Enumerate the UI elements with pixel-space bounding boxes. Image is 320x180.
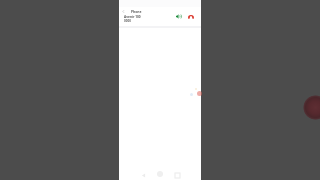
button[interactable]: End call <box>185 10 197 22</box>
staticText: Phone <box>131 9 142 13</box>
button[interactable]: Recents <box>172 170 182 180</box>
staticText: 0000 <box>124 19 131 23</box>
staticText: Avenir 100 <box>124 15 141 19</box>
button[interactable]: Back <box>138 170 148 180</box>
button[interactable]: Speaker <box>172 10 184 22</box>
button[interactable]: Home <box>155 169 165 179</box>
button[interactable]: Back <box>120 8 126 14</box>
